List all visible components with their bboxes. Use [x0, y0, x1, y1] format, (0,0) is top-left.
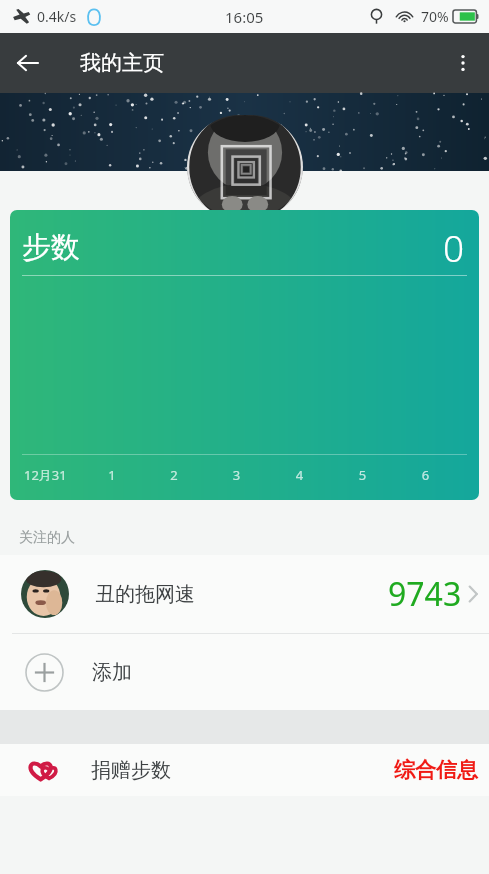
staticText: 2 [143, 466, 205, 484]
button[interactable]: Back [0, 35, 56, 91]
staticText: 4 [268, 466, 331, 484]
button[interactable]: 步数 [10, 210, 479, 500]
staticText: 1 [81, 466, 143, 484]
staticText: 0.4k/s [37, 7, 77, 26]
staticText: 6 [394, 466, 457, 484]
staticText: 步数 [22, 229, 80, 266]
staticText: 丑的拖网速 [95, 582, 195, 607]
staticText: 捐赠步数 [91, 758, 171, 783]
staticText: 我的主页 [80, 50, 164, 76]
staticText: 3 [205, 466, 268, 484]
staticText: 70% [421, 7, 449, 26]
staticText: 5 [331, 466, 394, 484]
staticText: 0 [443, 222, 465, 272]
staticText: 9743 [388, 572, 462, 616]
button[interactable]: Profile photo [187, 115, 303, 219]
staticText: 12月31 [24, 466, 67, 484]
staticText: 16:05 [225, 7, 264, 27]
staticText: 添加 [92, 660, 132, 685]
button[interactable]: 捐赠步数 [0, 744, 489, 796]
button[interactable]: More options [437, 37, 489, 89]
button[interactable]: 丑的拖网速 [0, 555, 489, 633]
staticText: 综合信息 [394, 757, 478, 783]
staticText: 关注的人 [19, 529, 75, 547]
button[interactable]: 添加 [0, 634, 489, 710]
